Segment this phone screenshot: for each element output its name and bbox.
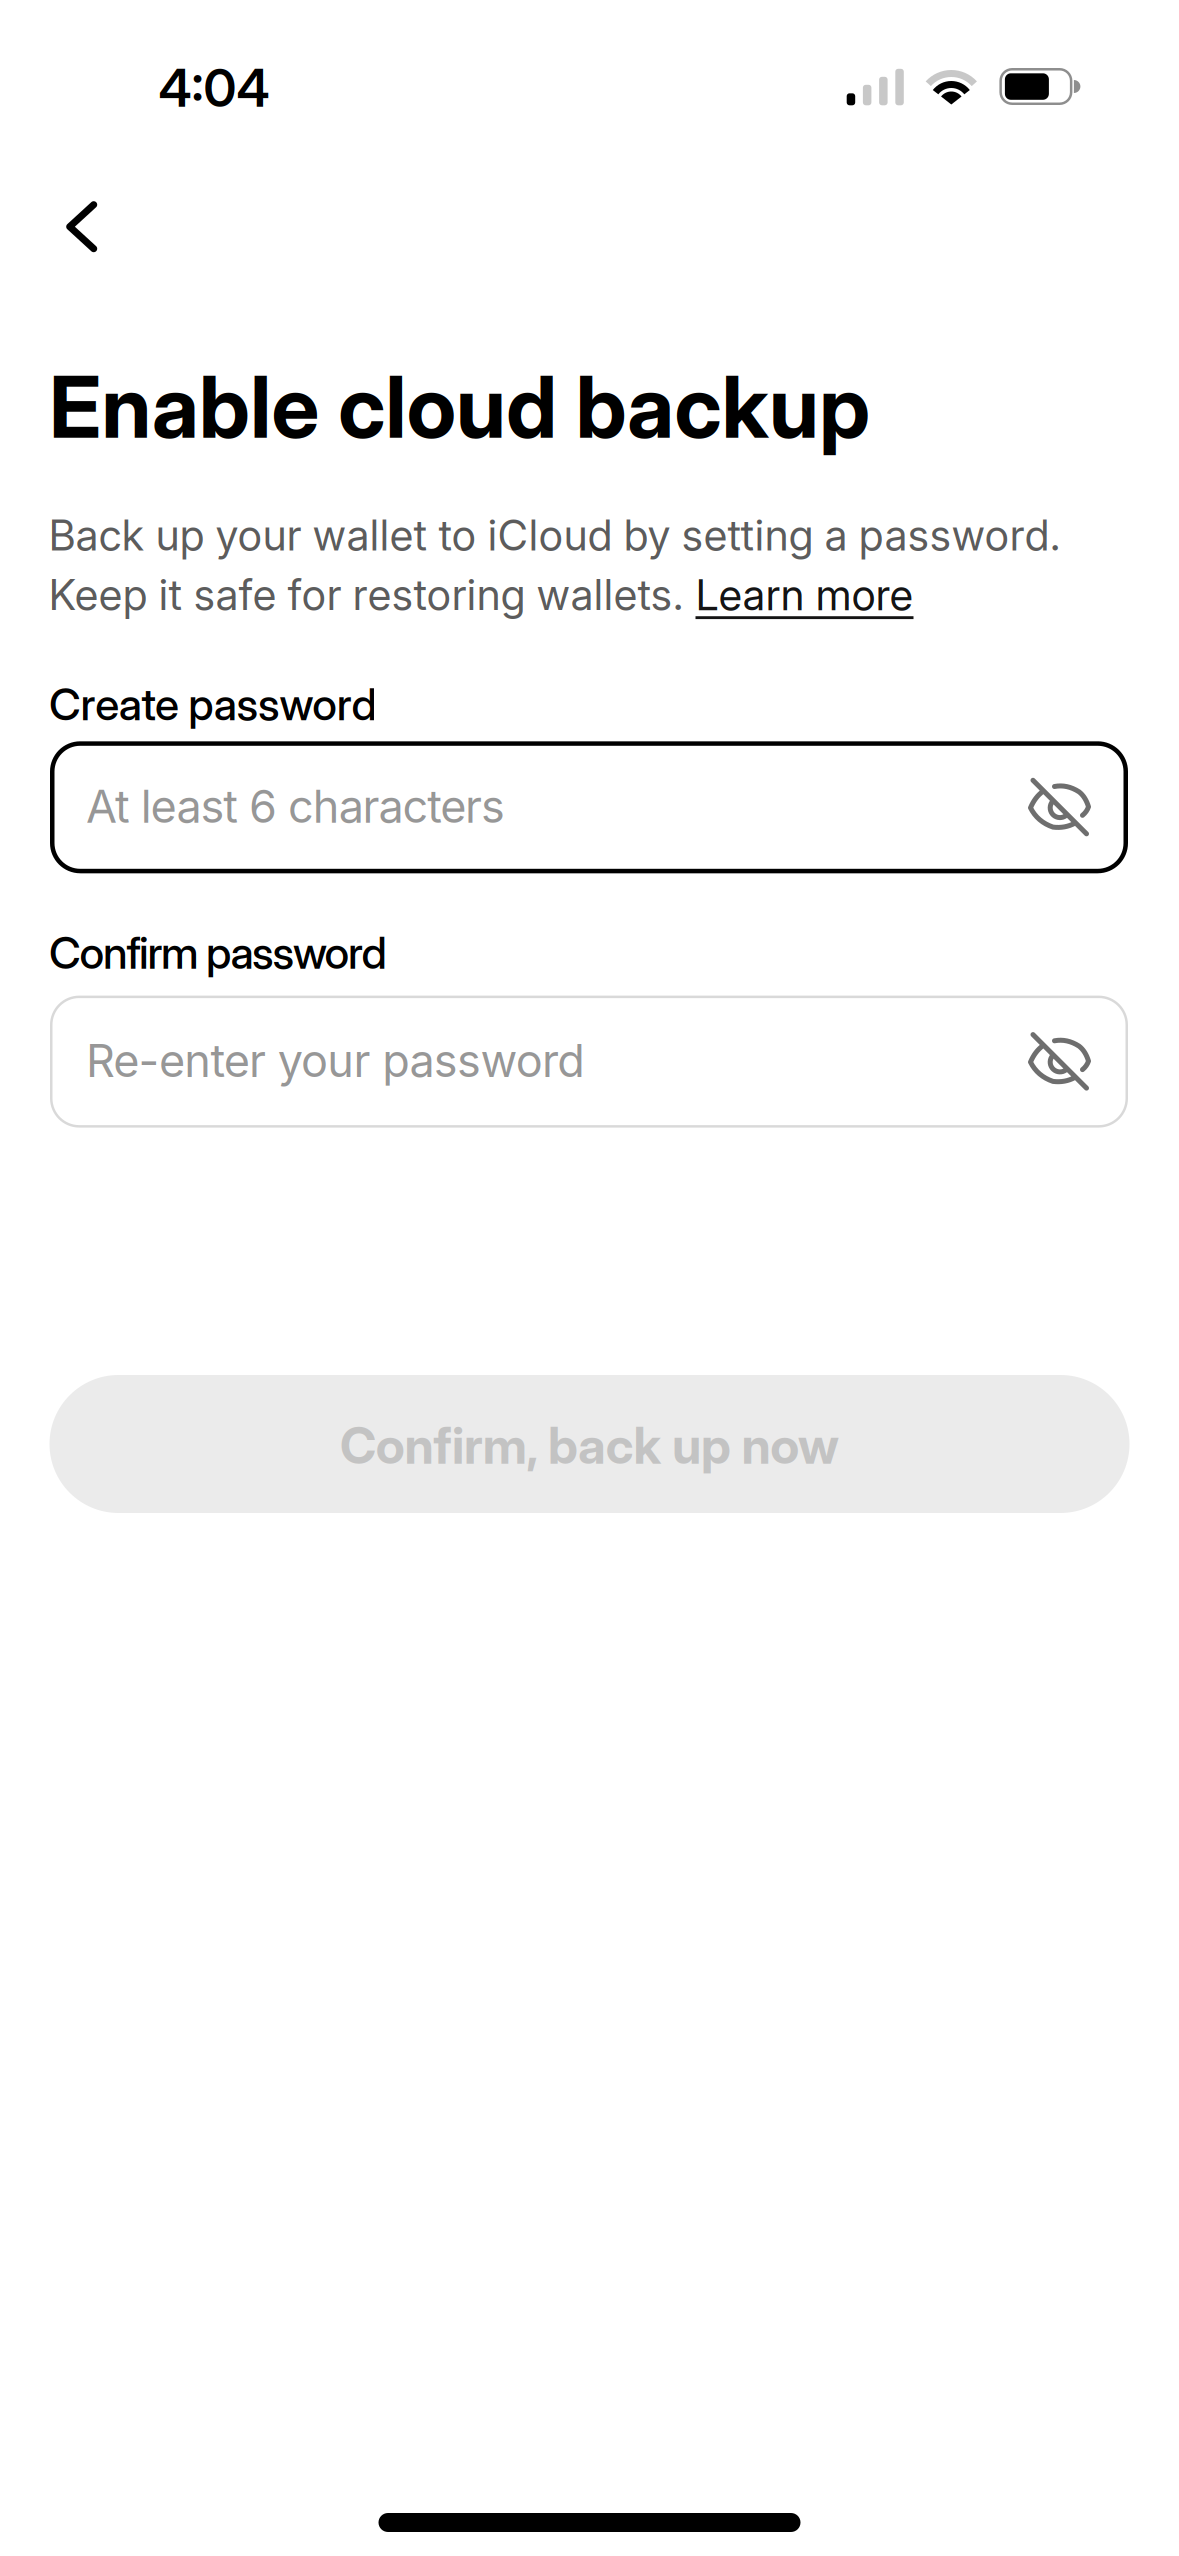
staticText: Learn more (695, 570, 913, 620)
staticText: At least 6 characters (86, 780, 505, 833)
button[interactable]: Show password (1030, 1032, 1090, 1092)
staticText: Back up your wallet to iCloud by setting… (48, 510, 1060, 560)
staticText: Re-enter your password (86, 1034, 585, 1087)
staticText: Enable cloud backup (49, 357, 870, 457)
button[interactable]: Back (44, 179, 120, 275)
button[interactable]: At least 6 characters (50, 741, 1128, 873)
button[interactable]: Confirm, back up now (49, 1375, 1129, 1513)
staticText: Keep it safe for restoring wallets. (48, 570, 683, 619)
button[interactable]: Show password (1030, 777, 1090, 837)
button[interactable]: Re-enter your password (50, 996, 1128, 1128)
staticText: 4:04 (158, 58, 269, 118)
staticText: Create password (49, 678, 376, 730)
staticText: Confirm, back up now (340, 1416, 839, 1475)
button[interactable]: Learn more (695, 570, 913, 620)
staticText: Confirm password (49, 927, 386, 979)
